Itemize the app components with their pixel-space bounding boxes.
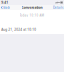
staticText: Back	[3, 5, 10, 10]
staticText: Aug 21, 2024 at 10:10	[1, 27, 36, 32]
staticText: Conversation	[21, 5, 42, 10]
staticText: 9:41	[1, 0, 8, 5]
button[interactable]: Details	[52, 5, 64, 10]
staticText: Details	[53, 5, 63, 10]
staticText: Today 10:10 AM	[19, 13, 44, 17]
button[interactable]: Back	[0, 5, 11, 10]
